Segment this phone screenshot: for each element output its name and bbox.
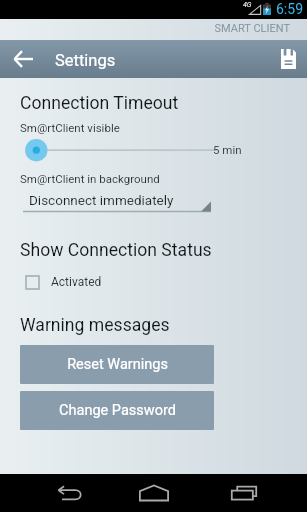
staticText: Warning messages — [20, 315, 170, 336]
staticText: Show Connection Status — [20, 240, 212, 261]
button[interactable]: Reset Warnings — [20, 345, 214, 384]
button[interactable]: Recent apps — [210, 474, 278, 512]
staticText: Sm@rtClient in background — [20, 172, 160, 185]
button[interactable]: Back — [35, 474, 103, 512]
staticText: 6:59 — [276, 1, 303, 17]
staticText: 5 min — [213, 143, 242, 156]
button[interactable]: Change Password — [20, 391, 214, 430]
staticText: Activated — [51, 275, 102, 289]
button[interactable]: Activated — [22, 271, 102, 293]
button[interactable]: Sm@rtClient in background option — [23, 191, 211, 213]
staticText: SMART CLIENT — [0, 22, 290, 35]
button[interactable]: Home — [120, 474, 188, 512]
button[interactable]: Visibility timeout slider — [14, 138, 209, 161]
staticText: Connection Timeout — [20, 93, 179, 114]
button[interactable]: Save — [269, 40, 307, 78]
staticText: Disconnect immediately — [29, 192, 174, 208]
staticText: Settings — [55, 51, 116, 70]
staticText: Reset Warnings — [67, 356, 168, 373]
staticText: 4G — [243, 1, 252, 9]
staticText: Sm@rtClient visible — [20, 121, 120, 134]
staticText: Change Password — [59, 402, 176, 419]
button[interactable]: Navigate up — [4, 40, 42, 78]
